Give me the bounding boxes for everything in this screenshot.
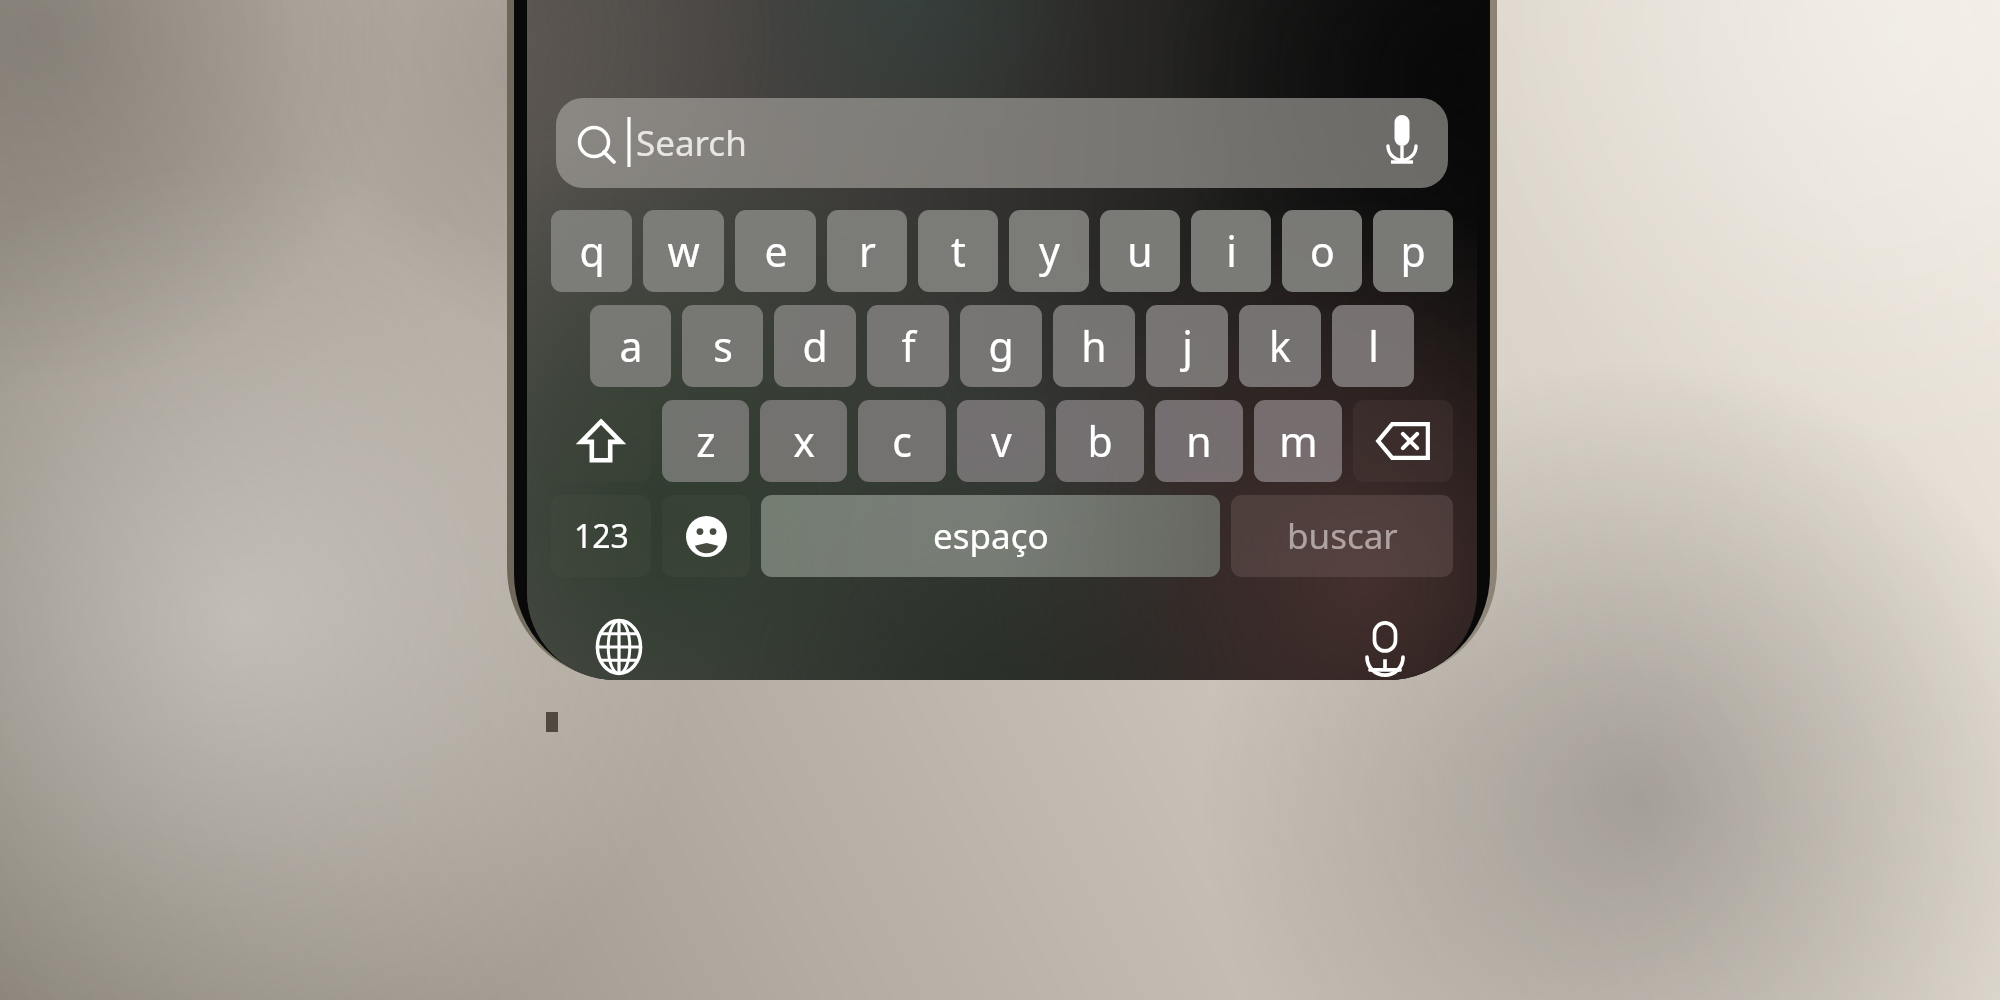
button[interactable]: x <box>760 400 847 482</box>
button[interactable]: o <box>1282 210 1362 292</box>
staticText: buscar <box>1287 512 1398 560</box>
button[interactable]: w <box>643 210 724 292</box>
button[interactable]: buscar <box>1231 495 1453 577</box>
staticText: z <box>696 413 716 469</box>
button[interactable]: 123 <box>551 495 651 577</box>
staticText: d <box>802 318 828 374</box>
button[interactable]: d <box>774 305 856 387</box>
button[interactable]: b <box>1056 400 1144 482</box>
staticText: r <box>859 223 876 279</box>
button[interactable]: s <box>682 305 763 387</box>
button[interactable]: i <box>1191 210 1271 292</box>
staticText: x <box>793 413 815 469</box>
staticText: s <box>713 318 733 374</box>
staticText: v <box>991 413 1012 469</box>
button[interactable]: l <box>1332 305 1414 387</box>
staticText: espaço <box>933 512 1049 560</box>
button[interactable]: v <box>957 400 1045 482</box>
staticText: o <box>1310 223 1335 279</box>
staticText: u <box>1127 223 1153 279</box>
button[interactable]: r <box>827 210 907 292</box>
button[interactable]: h <box>1053 305 1135 387</box>
staticText: j <box>1182 318 1193 374</box>
staticText: g <box>988 318 1014 374</box>
button[interactable]: Search <box>556 98 1448 188</box>
button[interactable]: n <box>1155 400 1243 482</box>
button[interactable]: u <box>1100 210 1180 292</box>
staticText: t <box>951 223 966 279</box>
staticText: e <box>764 223 788 279</box>
staticText: 123 <box>574 514 629 558</box>
button[interactable]: y <box>1009 210 1089 292</box>
staticText: a <box>619 318 643 374</box>
button[interactable]: e <box>735 210 816 292</box>
staticText: m <box>1279 413 1318 469</box>
button[interactable]: Backspace <box>1353 400 1453 482</box>
staticText: c <box>892 413 912 469</box>
staticText: w <box>667 223 700 279</box>
staticText: y <box>1039 223 1060 279</box>
button[interactable]: Emoji <box>662 495 750 577</box>
button[interactable]: Dictation <box>1345 613 1425 680</box>
staticText: Search <box>636 119 747 167</box>
button[interactable]: Shift <box>551 400 651 482</box>
button[interactable]: f <box>867 305 949 387</box>
staticText: k <box>1269 318 1291 374</box>
button[interactable]: k <box>1239 305 1321 387</box>
button[interactable]: t <box>918 210 998 292</box>
staticText: q <box>579 223 605 279</box>
button[interactable]: a <box>590 305 671 387</box>
button[interactable]: p <box>1373 210 1453 292</box>
staticText: h <box>1081 318 1107 374</box>
button[interactable]: c <box>858 400 946 482</box>
staticText: l <box>1368 318 1379 374</box>
button[interactable]: Change keyboard <box>579 613 659 680</box>
button[interactable]: m <box>1254 400 1342 482</box>
button[interactable]: espaço <box>761 495 1220 577</box>
staticText: f <box>901 318 916 374</box>
button[interactable]: j <box>1146 305 1228 387</box>
staticText: p <box>1400 223 1426 279</box>
button[interactable]: g <box>960 305 1042 387</box>
staticText: b <box>1087 413 1113 469</box>
button[interactable]: q <box>551 210 632 292</box>
button[interactable]: z <box>662 400 749 482</box>
staticText: n <box>1186 413 1212 469</box>
staticText: i <box>1226 223 1237 279</box>
